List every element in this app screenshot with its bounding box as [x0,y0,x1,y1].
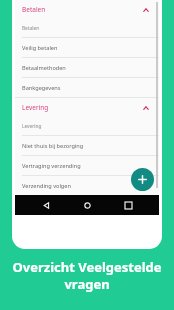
staticText: Veilig betalen [22,44,58,52]
staticText: Verzending volgen [22,182,71,190]
button[interactable]: Vraag toevoegen [131,168,154,191]
staticText: Niet thuis bij bezorging [22,142,84,150]
button[interactable]: Verzending volgen [15,176,159,195]
staticText: Betalen [22,25,40,32]
button[interactable]: Home [77,195,97,215]
button[interactable]: Vertraging verzending [15,156,159,175]
button[interactable]: Betalen [15,0,159,19]
button[interactable]: Levering [15,98,159,117]
staticText: Levering [22,123,42,130]
button[interactable]: Veilig betalen [15,38,159,57]
staticText: Betaalmethoden [22,64,66,72]
staticText: Bankgegevens [22,84,61,92]
button[interactable]: Bankgegevens [15,78,159,97]
button[interactable]: Recente apps [118,195,138,215]
other: Inklappen [142,104,150,112]
other: Inklappen [142,6,150,14]
staticText: Levering [22,103,142,112]
staticText: Vertraging verzending [22,162,81,170]
staticText: Overzicht Veelgestelde vragen [12,258,162,293]
button[interactable]: Niet thuis bij bezorging [15,136,159,155]
staticText: Betalen [22,5,142,14]
button[interactable]: Terug [36,195,56,215]
button[interactable]: Betaalmethoden [15,58,159,77]
